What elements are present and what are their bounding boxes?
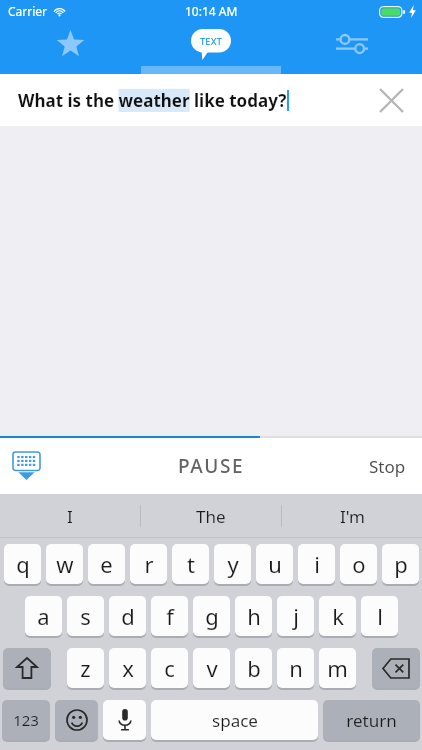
button[interactable]: a (25, 596, 62, 638)
button[interactable]: z (67, 648, 104, 690)
button[interactable]: s (67, 596, 104, 638)
button[interactable]: o (340, 544, 377, 586)
button[interactable]: c (151, 648, 188, 690)
button[interactable]: return (323, 700, 420, 742)
staticText: p (394, 549, 408, 579)
button[interactable] (3, 648, 51, 690)
staticText: The (196, 505, 226, 528)
staticText: w (56, 549, 74, 579)
staticText: j (293, 601, 299, 631)
button[interactable]: 123 (2, 700, 50, 742)
staticText: r (144, 549, 154, 579)
button[interactable]: v (193, 648, 230, 690)
button[interactable]: Clear text (368, 77, 414, 123)
staticText: q (16, 549, 30, 579)
staticText: I (67, 505, 73, 528)
staticText: space (212, 709, 258, 732)
other: Emoji (55, 700, 98, 742)
button[interactable]: The (141, 494, 281, 538)
button[interactable]: p (382, 544, 419, 586)
staticText: c (164, 653, 175, 683)
button[interactable]: x (109, 648, 146, 690)
other: Dictate (103, 700, 146, 742)
staticText: Stop (369, 455, 406, 478)
staticText: What is the weather like today? (18, 89, 287, 112)
button[interactable]: q (4, 544, 41, 586)
staticText: Carrier (8, 3, 48, 19)
staticText: m (327, 653, 348, 683)
button[interactable]: PAUSE (178, 453, 245, 479)
button[interactable]: t (172, 544, 209, 586)
button[interactable]: d (109, 596, 146, 638)
button[interactable]: b (235, 648, 272, 690)
button[interactable]: Hide keyboard (6, 446, 46, 486)
staticText: l (377, 601, 383, 631)
button[interactable]: k (319, 596, 356, 638)
staticText: 10:14 AM (185, 3, 238, 19)
staticText: 123 (13, 710, 39, 730)
staticText: t (187, 549, 195, 579)
staticText: v (206, 653, 218, 683)
button[interactable] (103, 700, 146, 742)
button[interactable]: Settings (281, 22, 422, 74)
button[interactable]: e (88, 544, 125, 586)
staticText: u (268, 549, 282, 579)
staticText: b (247, 653, 261, 683)
staticText: i (314, 549, 320, 579)
button[interactable]: Favorites (0, 22, 140, 74)
staticText: x (122, 653, 134, 683)
staticText: g (205, 601, 219, 631)
button[interactable] (55, 700, 98, 742)
button[interactable]: space (151, 700, 318, 742)
other: Backspace (372, 648, 420, 690)
button[interactable]: w (46, 544, 83, 586)
button[interactable]: r (130, 544, 167, 586)
staticText: I'm (340, 505, 365, 528)
button[interactable]: h (235, 596, 272, 638)
button[interactable]: j (277, 596, 314, 638)
button[interactable]: g (193, 596, 230, 638)
button[interactable]: l (361, 596, 398, 638)
staticText: h (247, 601, 261, 631)
staticText: TEXT (200, 35, 222, 48)
button[interactable]: y (214, 544, 251, 586)
button[interactable]: i (298, 544, 335, 586)
staticText: n (289, 653, 303, 683)
button[interactable]: f (151, 596, 188, 638)
staticText: PAUSE (178, 453, 245, 479)
staticText: o (352, 549, 366, 579)
staticText: y (227, 549, 239, 579)
staticText: a (37, 601, 50, 631)
button[interactable] (372, 648, 420, 690)
staticText: s (80, 601, 91, 631)
button[interactable]: u (256, 544, 293, 586)
button[interactable]: n (277, 648, 314, 690)
staticText: k (332, 601, 344, 631)
button[interactable]: m (319, 648, 356, 690)
button[interactable]: Text mode (140, 22, 281, 74)
other: Shift (3, 648, 51, 690)
button[interactable]: I'm (282, 494, 422, 538)
staticText: f (166, 601, 174, 631)
button[interactable]: I (0, 494, 140, 538)
staticText: return (346, 709, 397, 732)
staticText: d (121, 601, 135, 631)
button[interactable]: Stop (369, 455, 406, 478)
staticText: z (80, 653, 91, 683)
staticText: e (100, 549, 113, 579)
